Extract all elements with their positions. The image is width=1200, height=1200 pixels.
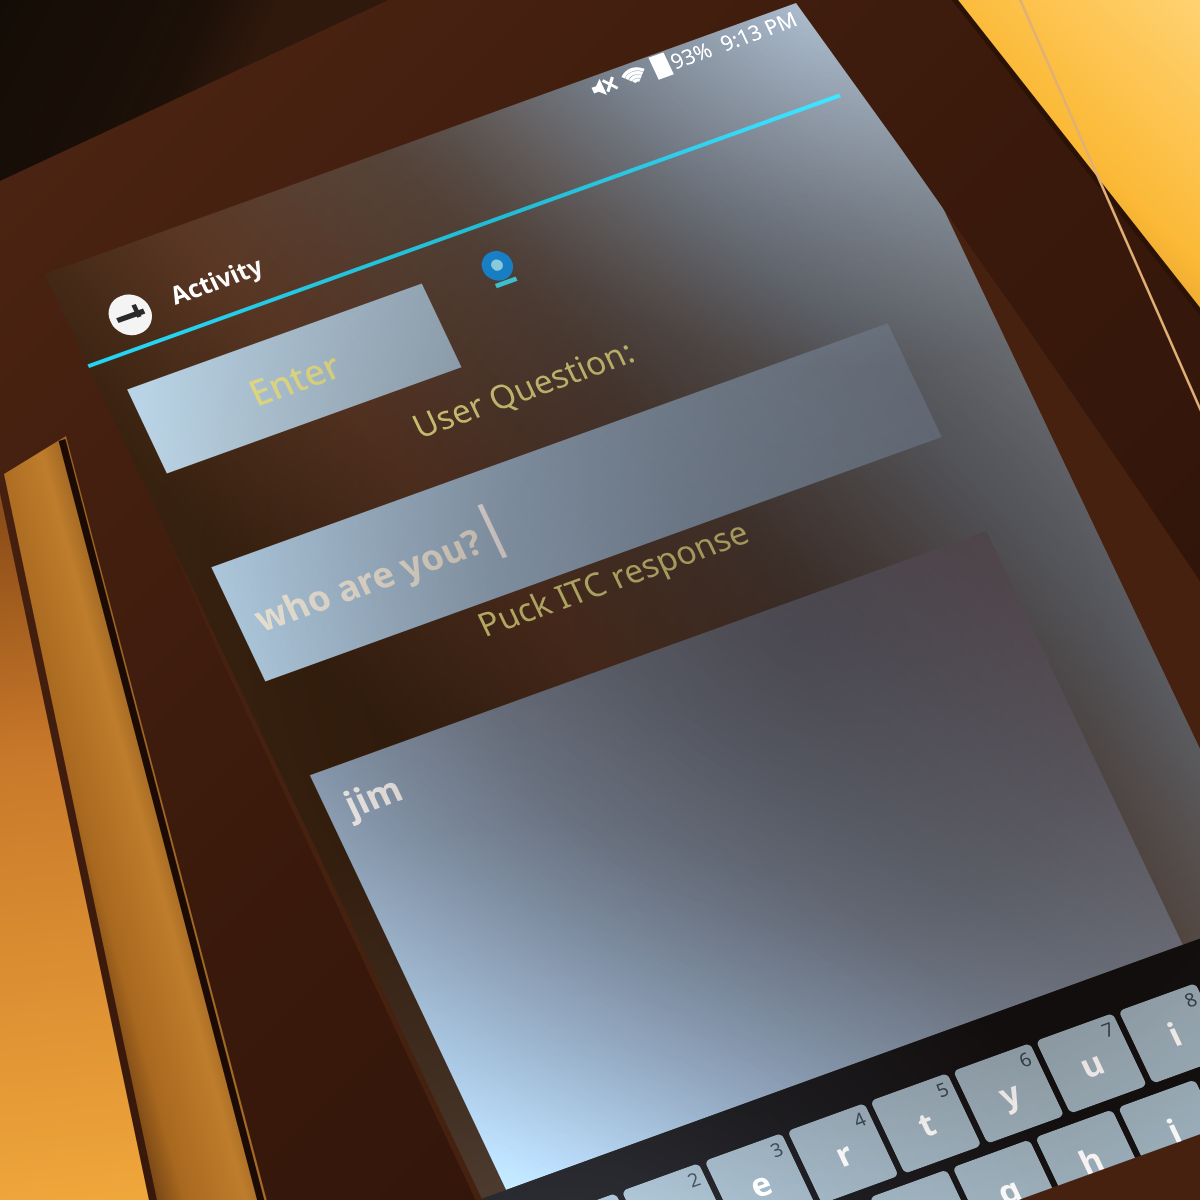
- button[interactable]: j: [1118, 1079, 1200, 1156]
- staticText: 8: [1180, 986, 1200, 1013]
- staticText: 3: [766, 1136, 788, 1163]
- button[interactable]: g: [952, 1139, 1052, 1200]
- staticText: 7: [1097, 1016, 1119, 1043]
- button[interactable]: r: [787, 1103, 899, 1200]
- button[interactable]: w: [621, 1163, 733, 1200]
- staticText: h: [1071, 1136, 1107, 1175]
- staticText: 2: [683, 1166, 705, 1193]
- button[interactable]: f: [869, 1169, 969, 1200]
- staticText: y: [991, 1070, 1028, 1117]
- staticText: Enter: [240, 341, 349, 417]
- button[interactable]: e: [704, 1133, 816, 1200]
- staticText: 9:13 PM: [715, 5, 802, 58]
- staticText: jim: [336, 764, 410, 828]
- staticText: 1: [600, 1196, 622, 1200]
- button[interactable]: jim: [310, 531, 1183, 1190]
- staticText: who are you?: [246, 517, 491, 642]
- staticText: Puck ITC response: [264, 435, 960, 721]
- staticText: j: [1159, 1108, 1184, 1143]
- button[interactable]: q: [538, 1193, 650, 1200]
- staticText: i: [1160, 1012, 1189, 1056]
- button[interactable]: u: [1036, 1013, 1147, 1114]
- staticText: 6: [1014, 1046, 1036, 1073]
- button[interactable]: t: [870, 1073, 982, 1174]
- staticText: 93%: [665, 35, 717, 76]
- staticText: 5: [932, 1076, 953, 1103]
- staticText: u: [1072, 1039, 1112, 1088]
- other: Text cursor handle: [471, 244, 534, 301]
- staticText: User Question:: [175, 246, 870, 531]
- staticText: e: [741, 1160, 780, 1200]
- staticText: t: [910, 1100, 943, 1147]
- button[interactable]: i: [1118, 983, 1200, 1084]
- staticText: g: [989, 1166, 1024, 1200]
- staticText: r: [827, 1131, 861, 1177]
- staticText: Activity: [164, 248, 269, 311]
- button[interactable]: h: [1035, 1109, 1135, 1186]
- button[interactable]: who are you?: [211, 323, 942, 681]
- button[interactable]: Enter: [127, 283, 461, 473]
- button[interactable]: y: [953, 1043, 1065, 1144]
- staticText: 4: [849, 1106, 870, 1133]
- button[interactable]: d: [787, 1199, 887, 1200]
